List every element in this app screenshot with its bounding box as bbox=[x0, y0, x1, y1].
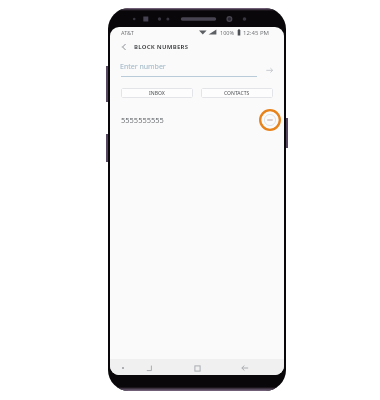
staticText: 100% bbox=[220, 29, 235, 36]
button[interactable]: Add number bbox=[261, 61, 277, 77]
button[interactable]: Show keyboard bbox=[116, 361, 130, 375]
staticText: 12:45 PM bbox=[243, 29, 269, 37]
staticText: CONTACTS bbox=[224, 90, 250, 97]
button[interactable]: Home bbox=[188, 359, 206, 375]
button[interactable]: 5555555555 bbox=[110, 107, 284, 133]
button[interactable]: Back bbox=[117, 40, 131, 54]
button[interactable]: Recent apps bbox=[140, 359, 158, 375]
staticText: AT&T bbox=[121, 29, 134, 36]
button[interactable]: INBOX bbox=[121, 88, 193, 98]
staticText: Enter number bbox=[120, 62, 166, 72]
staticText: BLOCK NUMBERS bbox=[134, 43, 189, 51]
staticText: 5555555555 bbox=[121, 115, 164, 125]
button[interactable]: Remove number bbox=[261, 111, 279, 129]
button[interactable]: Back bbox=[236, 359, 254, 375]
button[interactable]: CONTACTS bbox=[201, 88, 273, 98]
staticText: INBOX bbox=[149, 90, 165, 97]
